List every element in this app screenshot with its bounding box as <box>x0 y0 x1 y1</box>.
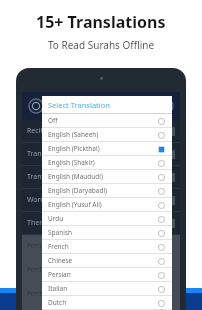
staticText: Spanish <box>48 228 73 237</box>
button[interactable]: Persian <box>42 268 172 281</box>
button[interactable]: Word by Word <box>22 189 180 211</box>
button[interactable]: Chinese <box>42 254 172 267</box>
button[interactable]: Recitation <box>22 120 180 142</box>
staticText: Theme <box>27 218 50 228</box>
button[interactable]: English (Yusuf Ali) <box>42 198 172 211</box>
button[interactable]: English (Saheeh) <box>42 128 172 141</box>
staticText: Chinese <box>48 256 73 265</box>
staticText: Off <box>48 116 58 125</box>
button[interactable]: Save <box>156 96 176 116</box>
staticText: English (Shakir) <box>48 158 95 167</box>
button[interactable]: Theme <box>22 212 180 234</box>
staticText: English (Daryabadi) <box>48 186 108 195</box>
staticText: 15+ Translations <box>36 11 166 33</box>
staticText: English (Pickthal) <box>48 144 100 153</box>
staticText: Font Size <box>27 241 57 251</box>
button[interactable]: English (Pickthal) <box>42 142 172 155</box>
staticText: English (Saheeh) <box>48 130 99 139</box>
staticText: Persian <box>48 270 71 279</box>
button[interactable]: French <box>42 240 172 253</box>
button[interactable]: Back <box>26 96 46 116</box>
staticText: English (Maududi) <box>48 172 103 181</box>
button[interactable]: Italian <box>42 282 172 295</box>
staticText: Word by Word <box>27 195 74 205</box>
button[interactable]: English (Shakir) <box>42 156 172 169</box>
staticText: Recitation <box>27 126 60 136</box>
staticText: Select Translation <box>48 100 110 110</box>
staticText: French <box>48 242 69 251</box>
staticText: Dutch <box>48 298 67 307</box>
staticText: Urdu <box>48 214 64 223</box>
staticText: Font Size <box>27 289 57 299</box>
button[interactable]: Transliteration <box>22 166 180 188</box>
staticText: Translation <box>27 149 64 159</box>
staticText: Transliteration <box>27 172 75 182</box>
button[interactable]: Translation <box>22 143 180 165</box>
button[interactable]: English (Daryabadi) <box>42 184 172 197</box>
staticText: To Read Surahs Offline <box>48 38 155 52</box>
button[interactable]: Spanish <box>42 226 172 239</box>
button[interactable]: Off <box>42 114 172 127</box>
button[interactable]: English (Maududi) <box>42 170 172 183</box>
staticText: Font Size <box>27 265 57 275</box>
staticText: Italian <box>48 284 68 293</box>
staticText: English (Yusuf Ali) <box>48 200 102 209</box>
button[interactable]: Dutch <box>42 296 172 309</box>
button[interactable]: Urdu <box>42 212 172 225</box>
